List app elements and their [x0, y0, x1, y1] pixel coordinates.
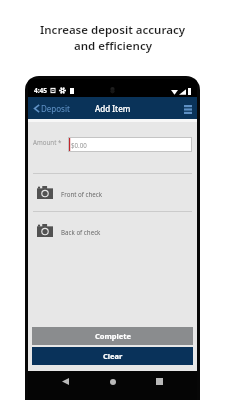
button[interactable]: $0.00	[68, 137, 192, 152]
staticText: Increase deposit accuracy	[40, 22, 185, 38]
button[interactable]: Front of check	[28, 174, 197, 211]
button[interactable]: Back of check	[28, 212, 197, 249]
staticText: $0.00	[71, 141, 87, 149]
staticText: Back of check	[61, 228, 101, 236]
staticText: Deposit	[41, 103, 70, 114]
button[interactable]: Complete	[32, 327, 193, 345]
button[interactable]: Recents	[151, 373, 168, 390]
staticText: Clear	[103, 351, 123, 361]
staticText: Front of check	[61, 190, 103, 198]
button[interactable]: Clear	[32, 347, 193, 365]
button[interactable]: Back	[57, 373, 74, 390]
staticText: 4:45	[34, 86, 47, 95]
button[interactable]: Menu	[184, 101, 192, 115]
staticText: and efficiency	[74, 38, 152, 54]
staticText: Add Item	[95, 103, 131, 114]
staticText: Complete	[95, 331, 131, 341]
button[interactable]: Deposit	[33, 103, 70, 114]
staticText: Amount *	[33, 138, 62, 146]
button[interactable]: Home	[104, 373, 121, 390]
